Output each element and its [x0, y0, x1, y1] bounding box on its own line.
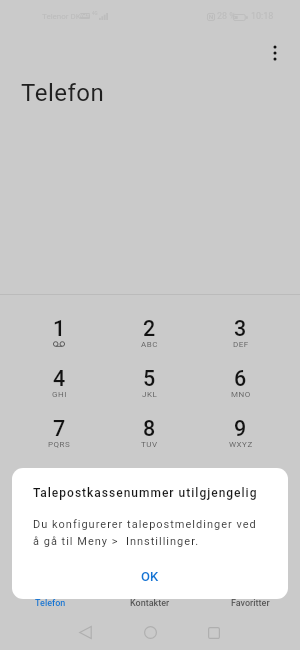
staticText: 4: [53, 366, 66, 391]
button[interactable]: 7: [14, 411, 104, 461]
button[interactable]: 4: [14, 361, 104, 411]
button[interactable]: More options: [263, 41, 287, 65]
button[interactable]: 2: [104, 311, 195, 361]
staticText: Telenor DK: [42, 12, 81, 21]
staticText: OK: [141, 569, 159, 584]
staticText: 28 %: [217, 11, 236, 22]
staticText: 4G: [92, 11, 98, 16]
button[interactable]: 9: [195, 411, 286, 461]
staticText: 2: [143, 316, 156, 341]
button[interactable]: Kontakter: [100, 592, 200, 614]
staticText: Talepostkassenummer utilgjengelig: [33, 486, 258, 500]
button[interactable]: 3: [195, 311, 286, 361]
button[interactable]: Recents: [201, 620, 226, 645]
staticText: DEF: [233, 340, 249, 349]
staticText: 1: [53, 316, 66, 341]
staticText: 6: [234, 366, 247, 391]
button[interactable]: 8: [104, 411, 195, 461]
staticText: Favoritter: [231, 598, 270, 609]
button[interactable]: 6: [195, 361, 286, 411]
staticText: WXYZ: [229, 440, 253, 449]
button[interactable]: 1: [14, 311, 104, 361]
staticText: 9: [234, 416, 247, 441]
staticText: Kontakter: [130, 598, 170, 609]
staticText: ABC: [141, 340, 158, 349]
button[interactable]: Telefon: [0, 592, 100, 614]
staticText: 8: [143, 416, 156, 441]
staticText: Du konfigurerer talepostmeldinger ved å …: [33, 518, 257, 547]
staticText: 10:18: [251, 11, 274, 22]
button[interactable]: Back: [73, 620, 98, 645]
staticText: 3: [234, 316, 247, 341]
staticText: PQRS: [48, 440, 71, 449]
staticText: 5: [143, 366, 156, 391]
staticText: 7: [53, 416, 66, 441]
staticText: Telefon: [35, 598, 66, 609]
staticText: Telefon: [21, 79, 105, 107]
staticText: TUV: [141, 440, 158, 449]
staticText: JKL: [142, 390, 158, 399]
button[interactable]: Favoritter: [200, 592, 300, 614]
staticText: VoLTE: [80, 13, 90, 19]
button[interactable]: 5: [104, 361, 195, 411]
staticText: MNO: [231, 390, 251, 399]
button[interactable]: Home: [138, 620, 163, 645]
staticText: GHI: [52, 390, 67, 399]
button[interactable]: OK: [132, 564, 168, 588]
